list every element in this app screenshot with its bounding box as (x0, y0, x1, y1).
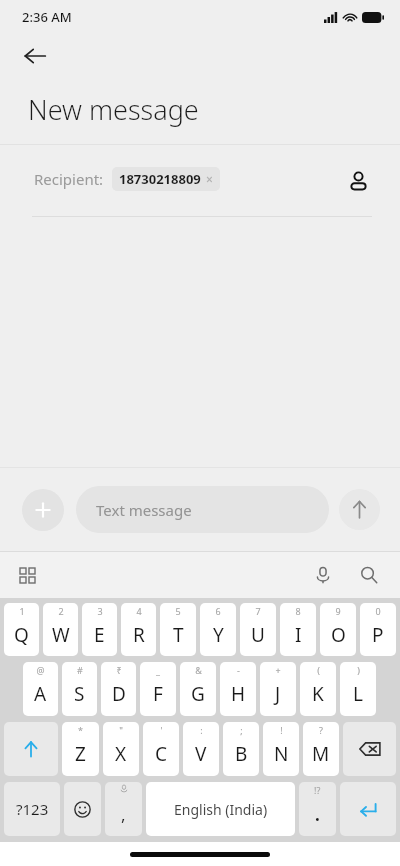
staticText: W (52, 622, 70, 648)
staticText: Z (75, 741, 86, 767)
staticText: P (372, 622, 384, 648)
staticText: 3 (97, 605, 103, 617)
staticText: ₹ (116, 664, 122, 676)
button[interactable]: ! (263, 722, 299, 776)
button[interactable]: 8 (280, 603, 316, 656)
staticText: " (119, 724, 123, 736)
staticText: 4 (136, 605, 142, 617)
button[interactable]: Shift (4, 722, 58, 776)
staticText: 5 (175, 605, 181, 617)
staticText: 2:36 AM (22, 8, 72, 26)
staticText: _ (156, 664, 160, 676)
staticText: O (331, 622, 346, 648)
button[interactable]: 9 (320, 603, 356, 656)
staticText: R (133, 622, 145, 648)
staticText: J (275, 681, 281, 707)
button[interactable]: * (62, 722, 99, 776)
button[interactable]: # (62, 662, 97, 716)
button[interactable]: ( (300, 662, 336, 716)
button[interactable]: - (220, 662, 256, 716)
staticText: 6 (215, 605, 221, 617)
button[interactable]: 0 (360, 603, 396, 656)
button[interactable]: Back (14, 35, 56, 77)
staticText: ; (240, 724, 243, 736)
button[interactable]: + (260, 662, 296, 716)
button[interactable]: 18730218809 (112, 167, 220, 191)
button[interactable]: Emoji (64, 782, 101, 836)
button[interactable]: ? (303, 722, 339, 776)
staticText: !? (314, 784, 321, 796)
staticText: M (312, 741, 330, 767)
button[interactable]: & (180, 662, 216, 716)
button[interactable]: , (105, 782, 142, 836)
staticText: 2 (58, 605, 64, 617)
button[interactable]: Keyboard options (8, 556, 46, 594)
staticText: - (237, 664, 240, 676)
button[interactable]: ?123 (4, 782, 60, 836)
button[interactable]: Search (350, 556, 388, 594)
staticText: & (195, 664, 202, 676)
button[interactable]: Voice input (304, 556, 342, 594)
button[interactable]: ₹ (101, 662, 136, 716)
staticText: ' (160, 724, 163, 736)
button[interactable]: Add attachment (22, 489, 64, 531)
staticText: Text message (96, 500, 192, 520)
button[interactable]: English (India) (146, 782, 295, 836)
button[interactable]: 1 (4, 603, 39, 656)
staticText: I (295, 622, 302, 648)
staticText: D (112, 681, 126, 707)
button[interactable]: 3 (82, 603, 117, 656)
staticText: ) (357, 664, 360, 676)
staticText: , (121, 803, 126, 826)
button[interactable]: 7 (240, 603, 276, 656)
button[interactable]: " (103, 722, 139, 776)
button[interactable]: _ (140, 662, 176, 716)
staticText: New message (28, 91, 199, 128)
staticText: ( (317, 664, 320, 676)
button[interactable]: 5 (160, 603, 196, 656)
staticText: N (274, 741, 289, 767)
staticText: . (315, 803, 320, 826)
button[interactable]: Enter (340, 782, 396, 836)
staticText: * (78, 724, 83, 736)
staticText: L (353, 681, 363, 707)
staticText: B (235, 741, 248, 767)
staticText: G (191, 681, 205, 707)
staticText: 8 (295, 605, 301, 617)
staticText: # (77, 664, 83, 676)
staticText: @ (36, 664, 45, 676)
staticText: T (173, 622, 184, 648)
staticText: K (312, 681, 324, 707)
button[interactable]: @ (23, 662, 58, 716)
staticText: Recipient: (34, 169, 104, 189)
staticText: H (231, 681, 246, 707)
button[interactable]: 4 (121, 603, 156, 656)
button[interactable]: ) (340, 662, 376, 716)
staticText: Y (213, 622, 224, 648)
staticText: 18730218809 (119, 170, 201, 188)
staticText: + (275, 664, 281, 676)
button[interactable]: 2 (43, 603, 78, 656)
staticText: ?123 (16, 799, 49, 819)
staticText: F (153, 681, 163, 707)
staticText: E (94, 622, 105, 648)
staticText: 7 (255, 605, 261, 617)
staticText: 0 (375, 605, 381, 617)
button[interactable]: : (183, 722, 219, 776)
button[interactable]: ; (223, 722, 259, 776)
staticText: C (155, 741, 168, 767)
staticText: X (115, 741, 127, 767)
staticText: ! (280, 724, 283, 736)
staticText: 9 (335, 605, 341, 617)
button[interactable]: Text message (76, 486, 329, 533)
staticText: × (206, 171, 213, 187)
staticText: ? (319, 724, 323, 736)
button[interactable]: !? (299, 782, 336, 836)
button[interactable]: ' (143, 722, 179, 776)
staticText: U (251, 622, 265, 648)
button[interactable]: Send (339, 489, 380, 530)
button[interactable]: Choose contact (338, 161, 378, 201)
button[interactable]: Backspace (343, 722, 396, 776)
staticText: V (195, 741, 207, 767)
button[interactable]: 6 (200, 603, 236, 656)
